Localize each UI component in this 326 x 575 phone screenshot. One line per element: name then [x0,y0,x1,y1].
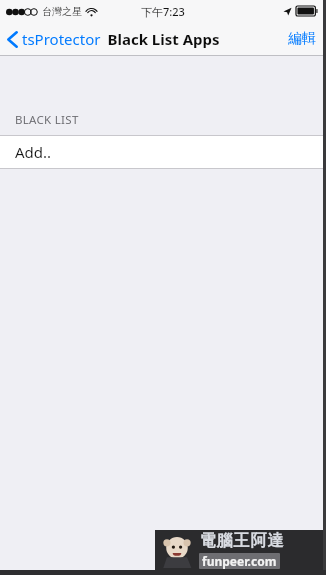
staticText: Add.. [15,142,52,162]
staticText: funpeer.com [202,553,277,569]
button[interactable]: tsProtector [0,22,107,56]
staticText: 電腦王阿達 [199,531,284,551]
staticText: BLACK LIST [15,112,79,128]
staticText: 編輯 [288,30,316,48]
staticText: Black List Apps [107,29,220,49]
staticText: 台灣之星 [42,5,82,18]
staticText: 下午7:23 [141,4,185,19]
button[interactable]: Add.. [0,136,326,168]
button[interactable]: 編輯 [278,22,326,56]
staticText: www.kocpc.com.tw [201,553,264,562]
staticText: tsProtector [22,29,101,49]
